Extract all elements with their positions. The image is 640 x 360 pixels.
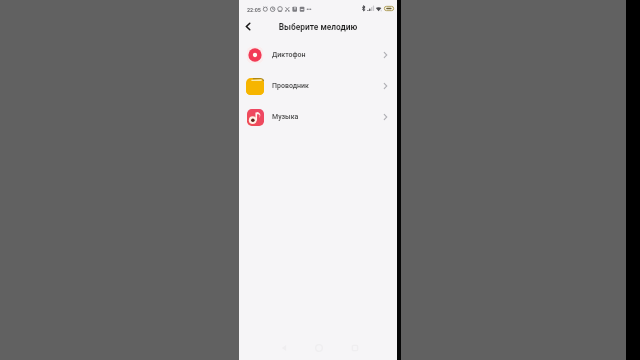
button[interactable]: Диктофон	[239, 39, 397, 70]
button[interactable]: Проводник	[239, 70, 397, 101]
staticText: Диктофон	[272, 51, 306, 59]
staticText: Музыка	[272, 113, 299, 121]
staticText: Проводник	[272, 82, 309, 90]
button[interactable]: Назад	[240, 19, 255, 34]
staticText: 22:05	[247, 7, 261, 13]
button[interactable]: Музыка	[239, 101, 397, 132]
staticText: Выберите мелодию	[239, 22, 397, 32]
